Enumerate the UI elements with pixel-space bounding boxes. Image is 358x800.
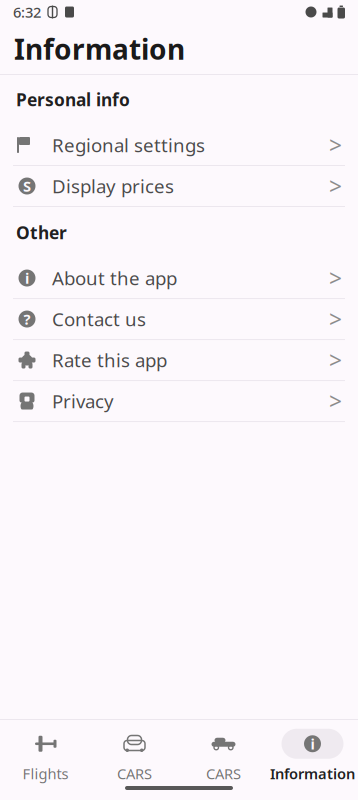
staticText: Information: [270, 764, 355, 783]
button[interactable]: Privacy: [0, 381, 358, 421]
button[interactable]: CARS: [179, 729, 268, 783]
staticText: Personal info: [16, 88, 130, 111]
button[interactable]: i: [268, 729, 357, 783]
button[interactable]: ?: [0, 299, 358, 339]
staticText: Rate this app: [52, 348, 167, 372]
staticText: i: [25, 268, 29, 288]
staticText: Regional settings: [52, 133, 205, 157]
button[interactable]: CARS: [90, 729, 179, 783]
button[interactable]: i: [0, 258, 358, 298]
staticText: About the app: [52, 266, 177, 290]
button[interactable]: Rate this app: [0, 340, 358, 380]
staticText: Flights: [22, 764, 68, 783]
button[interactable]: Flights: [1, 729, 90, 783]
staticText: Display prices: [52, 174, 174, 198]
staticText: Privacy: [52, 389, 114, 413]
staticText: >: [329, 263, 342, 293]
staticText: S: [23, 176, 31, 196]
staticText: Contact us: [52, 307, 146, 331]
staticText: CARS: [206, 764, 241, 783]
staticText: >: [329, 345, 342, 375]
staticText: 6:32: [13, 2, 41, 22]
staticText: Other: [16, 221, 67, 244]
staticText: Information: [14, 30, 185, 68]
staticText: >: [329, 304, 342, 334]
button[interactable]: Regional settings: [0, 125, 358, 165]
staticText: >: [329, 171, 342, 201]
staticText: >: [329, 130, 342, 160]
staticText: >: [329, 386, 342, 416]
staticText: i: [310, 734, 314, 753]
staticText: CARS: [117, 764, 152, 783]
button[interactable]: S: [0, 166, 358, 206]
staticText: ?: [23, 309, 30, 329]
